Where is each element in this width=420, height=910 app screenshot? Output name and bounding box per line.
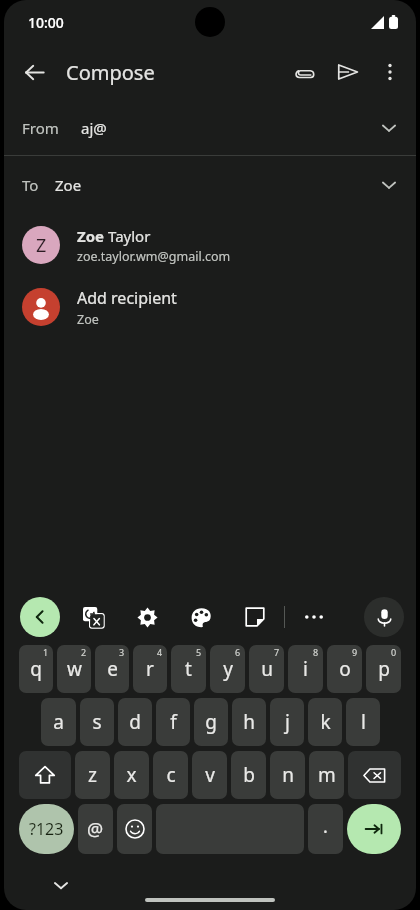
staticText: t bbox=[185, 656, 192, 682]
staticText: @ bbox=[87, 817, 104, 842]
staticText: q bbox=[30, 656, 42, 682]
staticText: To bbox=[22, 175, 39, 195]
button[interactable]: ?123 bbox=[19, 804, 74, 854]
staticText: r bbox=[146, 656, 154, 682]
button[interactable]: x bbox=[114, 751, 149, 799]
staticText: ?123 bbox=[29, 818, 64, 840]
staticText: e bbox=[107, 656, 118, 682]
staticText: 3 bbox=[119, 646, 125, 658]
staticText: m bbox=[318, 762, 336, 788]
staticText: w bbox=[67, 656, 82, 682]
staticText: f bbox=[170, 709, 177, 735]
staticText: 0 bbox=[391, 646, 397, 658]
button[interactable]: g bbox=[194, 698, 228, 746]
button[interactable]: More options bbox=[370, 52, 410, 92]
button[interactable]: h bbox=[232, 698, 266, 746]
button[interactable]: From bbox=[4, 100, 416, 155]
button[interactable]: b bbox=[231, 751, 266, 799]
button[interactable]: y bbox=[210, 645, 245, 693]
button[interactable]: u bbox=[249, 645, 284, 693]
button[interactable]: r bbox=[133, 645, 167, 693]
button[interactable]: Emoji bbox=[117, 804, 152, 854]
staticText: aj@ bbox=[81, 118, 107, 138]
button[interactable]: d bbox=[118, 698, 152, 746]
staticText: n bbox=[282, 762, 294, 788]
staticText: z bbox=[88, 762, 97, 788]
staticText: 1 bbox=[43, 646, 49, 658]
staticText: y bbox=[223, 656, 233, 682]
button[interactable]: s bbox=[80, 698, 114, 746]
button[interactable]: e bbox=[95, 645, 129, 693]
staticText: Zoe bbox=[77, 311, 99, 328]
staticText: From bbox=[22, 118, 59, 138]
staticText: l bbox=[361, 709, 366, 735]
button[interactable]: m bbox=[309, 751, 344, 799]
button[interactable]: p bbox=[366, 645, 401, 693]
staticText: . bbox=[323, 814, 328, 839]
button[interactable]: Backspace bbox=[348, 751, 401, 799]
button[interactable]: Hide keyboard bbox=[44, 868, 78, 902]
staticText: v bbox=[205, 762, 215, 788]
staticText: a bbox=[53, 709, 64, 735]
staticText: zoe.taylor.wm@gmail.com bbox=[77, 248, 231, 265]
staticText: 4 bbox=[157, 646, 163, 658]
button[interactable]: c bbox=[153, 751, 188, 799]
button[interactable]: j bbox=[270, 698, 304, 746]
staticText: Z bbox=[36, 233, 47, 258]
button[interactable]: Shift bbox=[19, 751, 71, 799]
staticText: 5 bbox=[196, 646, 202, 658]
button[interactable]: Z bbox=[4, 214, 416, 276]
staticText: Compose bbox=[66, 59, 155, 86]
staticText: o bbox=[339, 656, 351, 682]
staticText: d bbox=[129, 709, 141, 735]
button[interactable]: Voice input bbox=[364, 597, 404, 637]
staticText: s bbox=[92, 709, 102, 735]
staticText: b bbox=[243, 762, 255, 788]
button[interactable]: q bbox=[19, 645, 53, 693]
staticText: h bbox=[243, 709, 255, 735]
staticText: p bbox=[378, 656, 390, 682]
button[interactable]: Send bbox=[326, 50, 370, 94]
button[interactable]: v bbox=[192, 751, 227, 799]
button[interactable]: Translate bbox=[76, 600, 110, 634]
staticText: 2 bbox=[81, 646, 87, 658]
button[interactable]: l bbox=[346, 698, 380, 746]
staticText: x bbox=[126, 762, 137, 788]
button[interactable]: o bbox=[327, 645, 362, 693]
staticText: 10:00 bbox=[28, 13, 64, 32]
staticText: j bbox=[285, 709, 290, 735]
button[interactable]: Settings bbox=[130, 600, 164, 634]
button[interactable]: Add recipient bbox=[4, 276, 416, 338]
button[interactable]: i bbox=[288, 645, 323, 693]
staticText: k bbox=[320, 709, 331, 735]
button[interactable]: More bbox=[297, 600, 331, 634]
staticText: Zoe bbox=[77, 226, 108, 246]
staticText: 7 bbox=[274, 646, 280, 658]
staticText: g bbox=[205, 709, 217, 735]
button[interactable]: f bbox=[156, 698, 190, 746]
button[interactable]: To bbox=[4, 156, 416, 214]
button[interactable]: Attach file bbox=[282, 50, 326, 94]
button[interactable]: n bbox=[270, 751, 305, 799]
button[interactable]: Stickers bbox=[238, 600, 272, 634]
button[interactable]: a bbox=[41, 698, 76, 746]
staticText: i bbox=[303, 656, 308, 682]
staticText: 8 bbox=[313, 646, 319, 658]
staticText: 9 bbox=[352, 646, 358, 658]
staticText: Taylor bbox=[108, 226, 151, 246]
button[interactable]: . bbox=[308, 804, 343, 854]
button[interactable]: Enter bbox=[347, 804, 401, 854]
button[interactable]: t bbox=[171, 645, 206, 693]
button[interactable]: Themes bbox=[184, 600, 218, 634]
staticText: Add recipient bbox=[77, 287, 177, 309]
button[interactable]: @ bbox=[78, 804, 113, 854]
button[interactable]: w bbox=[57, 645, 91, 693]
button[interactable]: z bbox=[75, 751, 110, 799]
staticText: 6 bbox=[235, 646, 241, 658]
button[interactable]: k bbox=[308, 698, 342, 746]
button[interactable]: Back bbox=[12, 50, 56, 94]
staticText: u bbox=[261, 656, 273, 682]
button[interactable]: Close toolbar bbox=[20, 597, 60, 637]
staticText: c bbox=[166, 762, 176, 788]
